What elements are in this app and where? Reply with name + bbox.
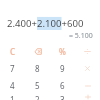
- staticText: 4: [10, 80, 15, 91]
- button[interactable]: 7: [0, 60, 25, 77]
- button[interactable]: 1: [0, 94, 25, 100]
- staticText: 9: [60, 63, 65, 74]
- button[interactable]: Minus: [75, 77, 100, 94]
- button[interactable]: 5: [25, 77, 50, 94]
- button[interactable]: 9: [50, 60, 75, 77]
- button[interactable]: 6: [50, 77, 75, 94]
- staticText: 5: [35, 80, 40, 91]
- staticText: C: [10, 46, 16, 57]
- button[interactable]: C: [0, 43, 25, 60]
- button[interactable]: 2: [25, 94, 50, 100]
- staticText: 2.400+2.100+600: [7, 17, 84, 30]
- staticText: 8: [35, 63, 40, 74]
- staticText: 6: [60, 80, 65, 91]
- button[interactable]: Backspace: [25, 43, 50, 60]
- button[interactable]: Plus: [75, 94, 100, 100]
- staticText: 1: [10, 94, 15, 100]
- staticText: = 5.100: [69, 31, 93, 41]
- staticText: 7: [10, 63, 15, 74]
- button[interactable]: 3: [50, 94, 75, 100]
- button[interactable]: %: [50, 43, 75, 60]
- button[interactable]: Multiply: [75, 60, 100, 77]
- staticText: %: [59, 46, 66, 57]
- staticText: 3: [60, 94, 65, 100]
- button[interactable]: 4: [0, 77, 25, 94]
- button[interactable]: Divide: [75, 43, 100, 60]
- staticText: 2: [35, 94, 40, 100]
- button[interactable]: 8: [25, 60, 50, 77]
